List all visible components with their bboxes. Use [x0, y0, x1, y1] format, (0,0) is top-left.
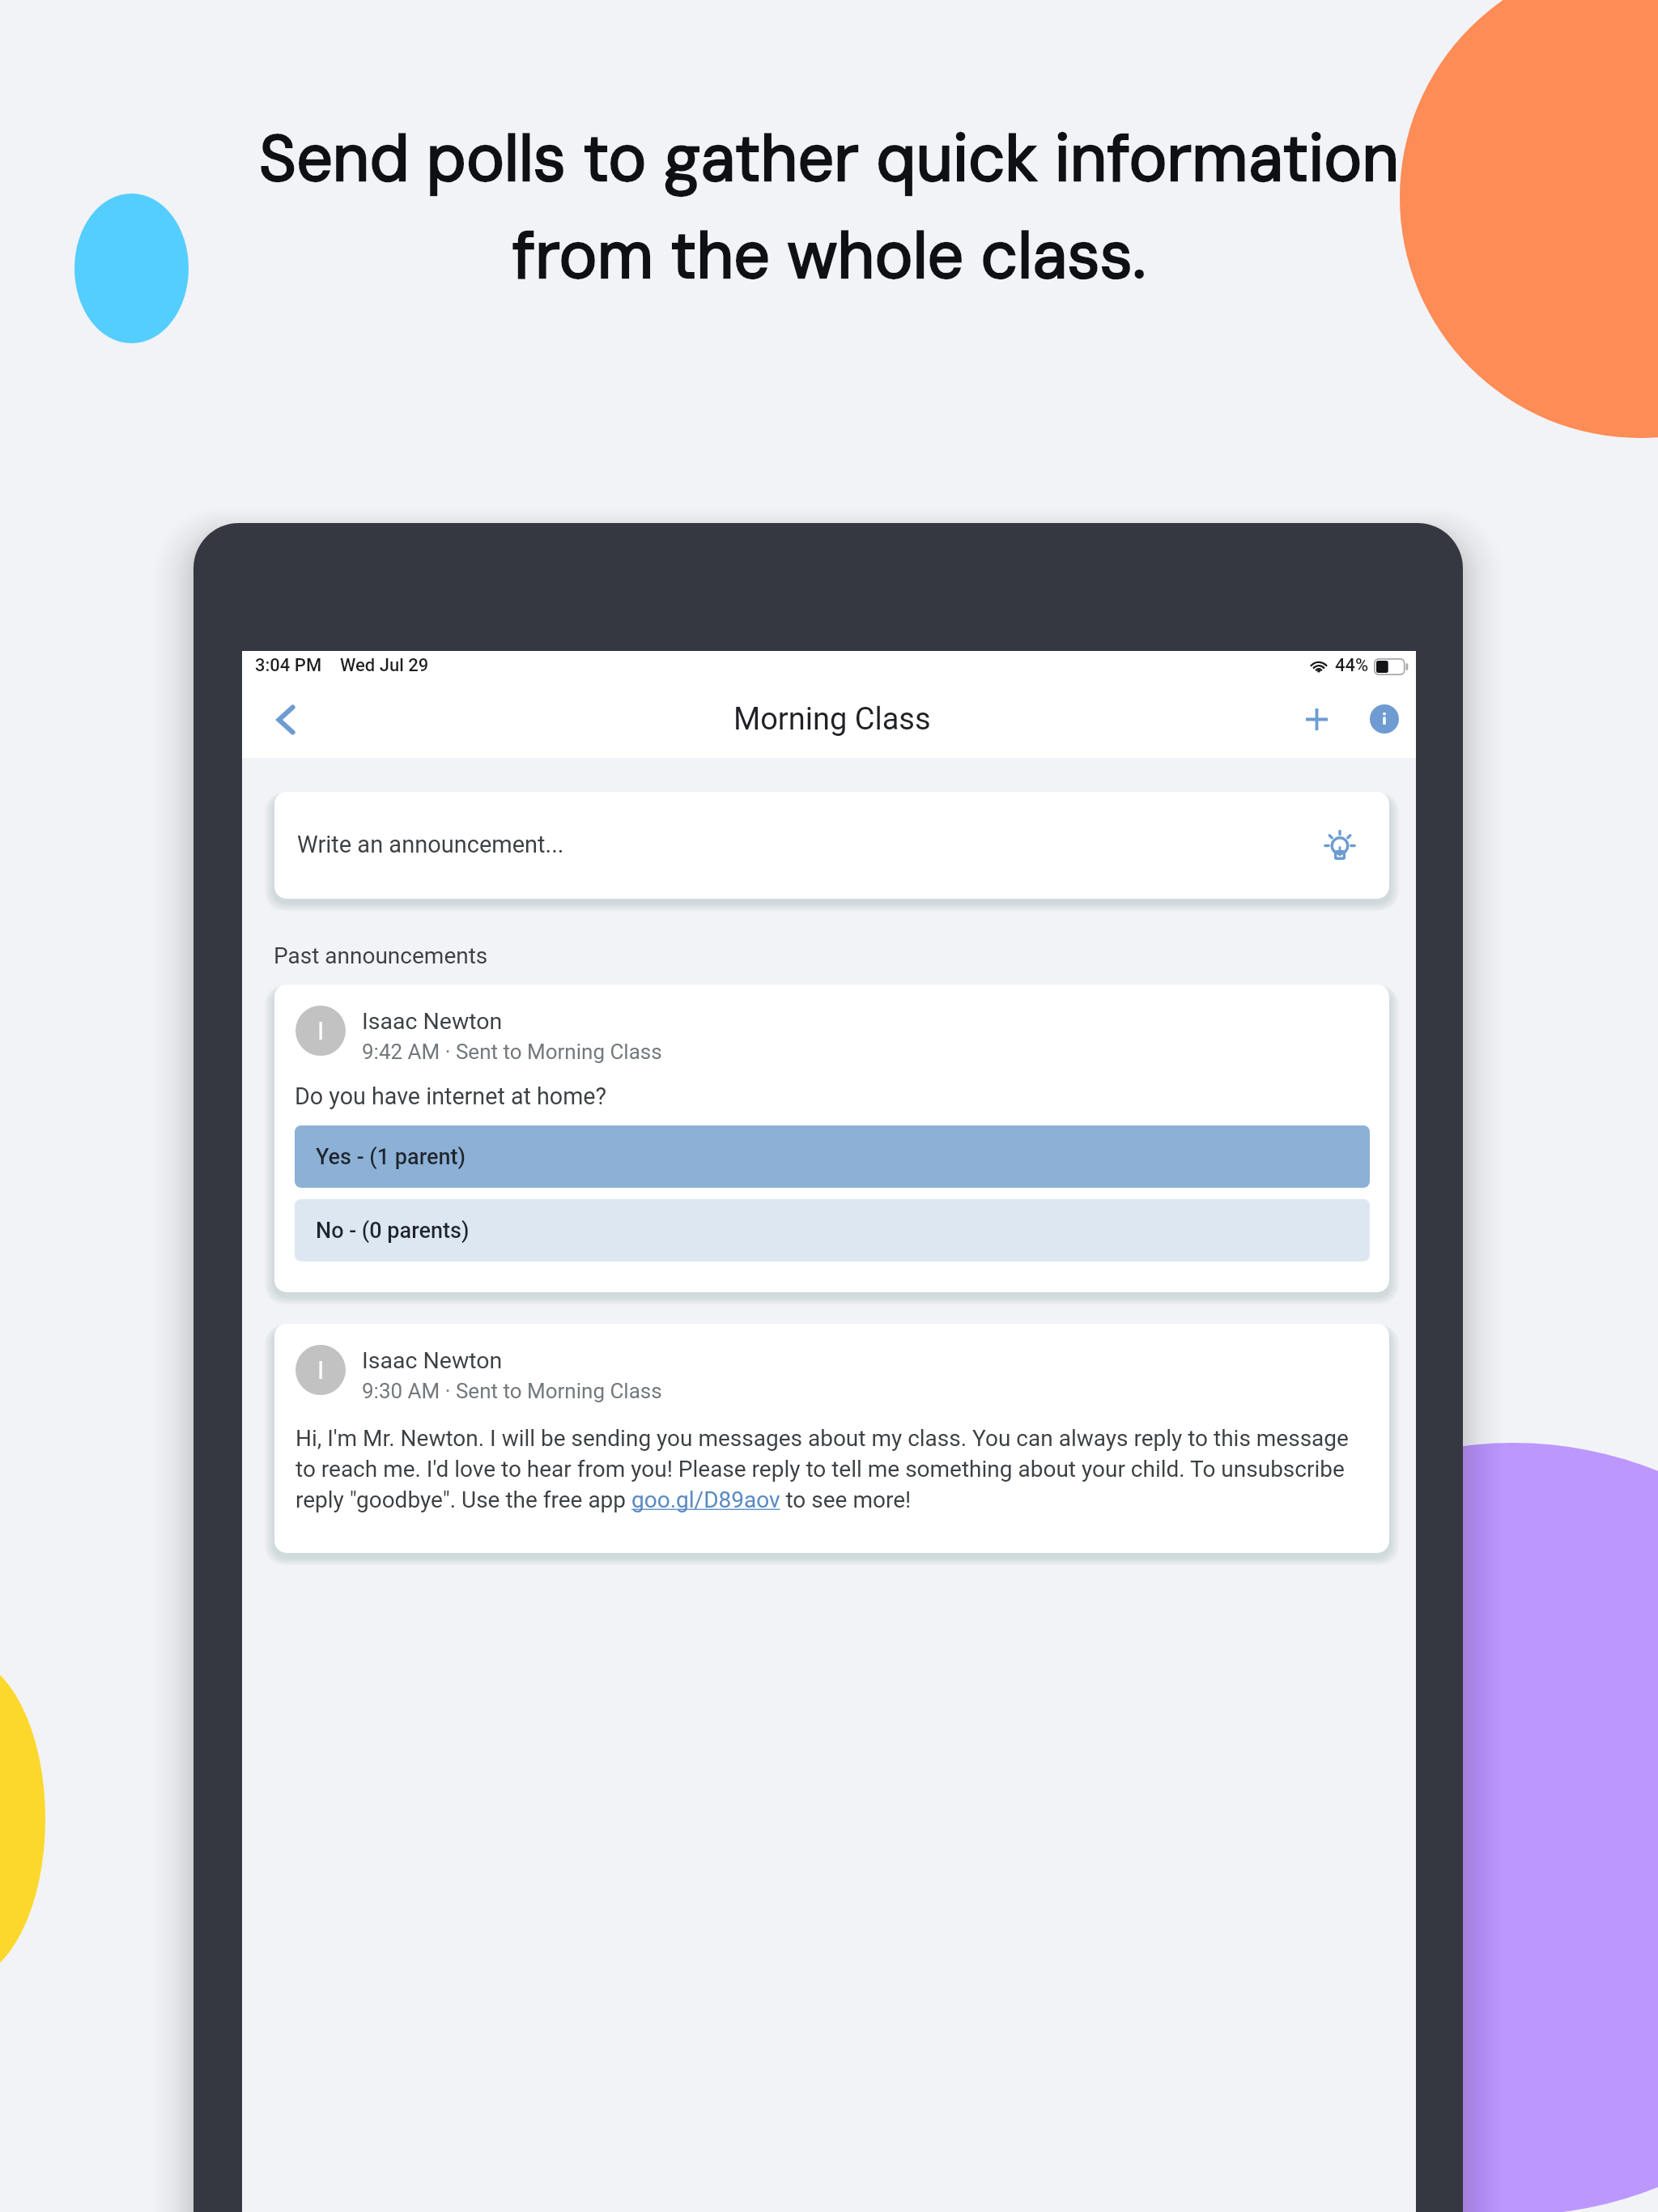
button[interactable]: No - (0 parents): [295, 1199, 1370, 1261]
staticText: No - (0 parents): [316, 1218, 470, 1244]
staticText: Send polls to gather quick information f…: [0, 117, 1658, 298]
staticText: I: [317, 1355, 325, 1385]
staticText: 44%: [1335, 655, 1369, 676]
staticText: 9:30 AM · Sent to Morning Class: [362, 1379, 662, 1403]
staticText: Morning Class: [733, 701, 931, 738]
staticText: Hi, I'm Mr. Newton. I will be sending yo…: [295, 1425, 1380, 1513]
button[interactable]: Class info: [1360, 695, 1409, 743]
button[interactable]: Yes - (1 parent): [295, 1125, 1370, 1188]
staticText: Yes - (1 parent): [316, 1144, 466, 1170]
staticText: Wed Jul 29: [340, 655, 429, 676]
button[interactable]: Writing suggestions: [1316, 821, 1364, 870]
button[interactable]: I: [274, 1324, 1389, 1553]
button[interactable]: Back: [262, 696, 311, 744]
button[interactable]: Add: [1292, 695, 1341, 743]
staticText: Isaac Newton: [362, 1347, 503, 1374]
staticText: Write an announcement...: [297, 831, 564, 858]
staticText: Isaac Newton: [362, 1008, 503, 1035]
button[interactable]: I: [274, 985, 1389, 1292]
staticText: 3:04 PM: [255, 655, 322, 676]
staticText: Do you have internet at home?: [295, 1083, 607, 1110]
staticText: Past announcements: [274, 942, 488, 969]
staticText: 9:42 AM · Sent to Morning Class: [362, 1040, 662, 1064]
button[interactable]: Write an announcement...: [274, 792, 1389, 899]
staticText: I: [317, 1016, 325, 1045]
